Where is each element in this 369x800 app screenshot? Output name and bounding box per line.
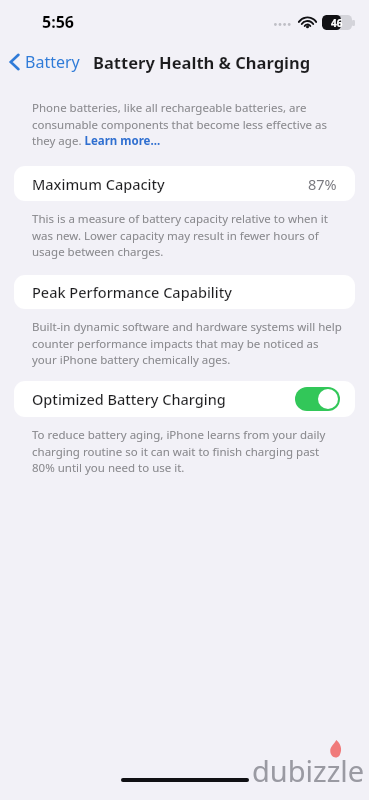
- staticText: Peak Performance Capability: [32, 282, 232, 302]
- button[interactable]: Maximum Capacity: [14, 166, 355, 201]
- staticText: 87%: [308, 174, 337, 194]
- staticText: Phone batteries, like all rechargeable b…: [32, 100, 343, 148]
- button[interactable]: Optimized Battery Charging toggle: [295, 387, 340, 411]
- staticText: This is a measure of battery capacity re…: [32, 211, 343, 259]
- staticText: Built-in dynamic software and hardware s…: [32, 319, 343, 367]
- staticText: To reduce battery aging, iPhone learns f…: [32, 427, 343, 475]
- staticText: Battery: [25, 51, 80, 73]
- button[interactable]: Battery: [0, 47, 84, 77]
- staticText: Maximum Capacity: [32, 174, 165, 194]
- staticText: dubizzle: [252, 751, 365, 790]
- staticText: 5:56: [42, 11, 74, 33]
- button[interactable]: Peak Performance Capability: [14, 275, 355, 309]
- staticText: Battery Health & Charging: [93, 51, 311, 73]
- staticText: Optimized Battery Charging: [32, 389, 226, 409]
- staticText: 46: [331, 16, 343, 30]
- button[interactable]: Optimized Battery Charging: [14, 381, 355, 417]
